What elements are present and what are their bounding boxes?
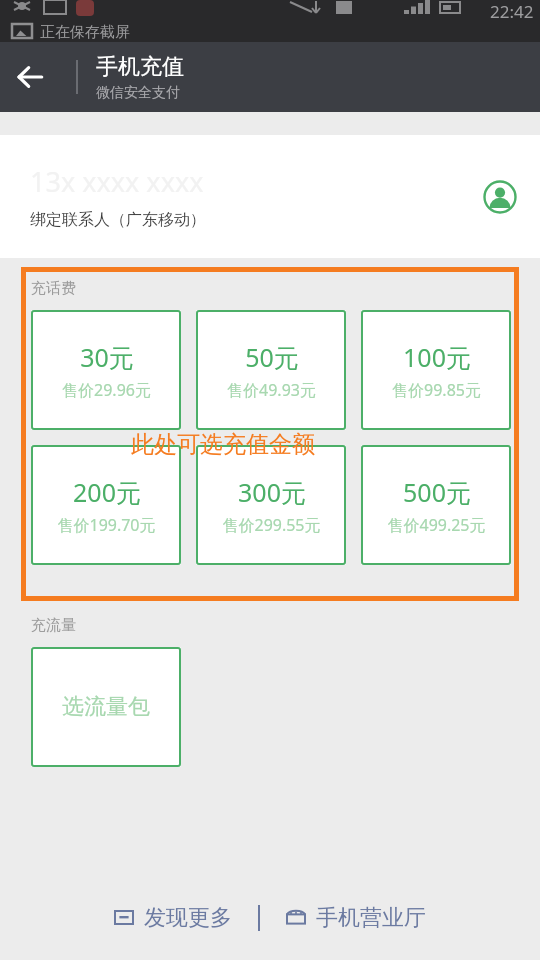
staticText: 发现更多 bbox=[144, 904, 232, 932]
staticText: 手机充值 bbox=[96, 53, 184, 81]
staticText: 绑定联系人（广东移动） bbox=[30, 210, 206, 230]
staticText: 30元 bbox=[80, 340, 134, 374]
button[interactable]: 发现更多 bbox=[108, 898, 238, 938]
staticText: 此处可选充值金额 bbox=[131, 430, 315, 459]
staticText: 售价199.70元 bbox=[57, 514, 156, 536]
button[interactable]: 100元 bbox=[361, 310, 511, 430]
staticText: 500元 bbox=[403, 475, 471, 509]
staticText: 300元 bbox=[238, 475, 306, 509]
button[interactable]: 13x xxxx xxxx bbox=[0, 135, 540, 258]
staticText: 微信安全支付 bbox=[96, 84, 180, 102]
staticText: 200元 bbox=[73, 475, 141, 509]
staticText: 13x xxxx xxxx bbox=[30, 163, 204, 200]
button[interactable]: 选流量包 bbox=[31, 647, 181, 767]
staticText: 正在保存截屏 bbox=[40, 23, 130, 42]
other: 选择联系人 bbox=[482, 179, 518, 215]
staticText: 售价99.85元 bbox=[392, 379, 481, 401]
staticText: 售价499.25元 bbox=[387, 514, 486, 536]
button[interactable]: 500元 bbox=[361, 445, 511, 565]
button[interactable]: 50元 bbox=[196, 310, 346, 430]
staticText: 选流量包 bbox=[62, 693, 150, 721]
staticText: 充话费 bbox=[31, 279, 76, 298]
staticText: 手机营业厅 bbox=[316, 904, 426, 932]
staticText: 售价29.96元 bbox=[62, 379, 151, 401]
staticText: 充流量 bbox=[31, 616, 76, 635]
button[interactable]: 30元 bbox=[31, 310, 181, 430]
staticText: 100元 bbox=[403, 340, 471, 374]
button[interactable]: 300元 bbox=[196, 445, 346, 565]
staticText: 售价299.55元 bbox=[222, 514, 321, 536]
staticText: 22:42 bbox=[490, 0, 534, 23]
staticText: 50元 bbox=[245, 340, 299, 374]
button[interactable]: 返回 bbox=[0, 47, 60, 107]
button[interactable]: 200元 bbox=[31, 445, 181, 565]
button[interactable]: 手机营业厅 bbox=[280, 898, 432, 938]
staticText: 售价49.93元 bbox=[227, 379, 316, 401]
